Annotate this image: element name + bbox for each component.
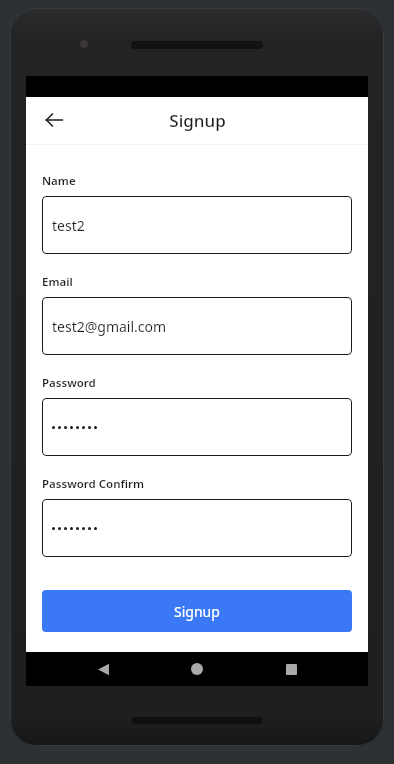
button[interactable]: Back xyxy=(34,100,74,140)
staticText: Password Confirm xyxy=(42,476,145,492)
button[interactable] xyxy=(42,398,352,456)
button[interactable]: Home xyxy=(180,652,214,686)
button[interactable]: Signup xyxy=(42,590,352,632)
staticText: test2@gmail.com xyxy=(52,317,167,336)
button[interactable]: test2@gmail.com xyxy=(42,297,352,355)
staticText: test2 xyxy=(52,216,85,235)
button[interactable]: Recent apps xyxy=(274,652,308,686)
button[interactable] xyxy=(42,499,352,557)
staticText: Signup xyxy=(174,602,220,621)
button[interactable]: test2 xyxy=(42,196,352,254)
button[interactable]: Back xyxy=(86,652,120,686)
staticText: Signup xyxy=(169,109,226,132)
staticText: Name xyxy=(42,173,76,189)
staticText: Password xyxy=(42,375,96,391)
staticText: Email xyxy=(42,274,73,290)
